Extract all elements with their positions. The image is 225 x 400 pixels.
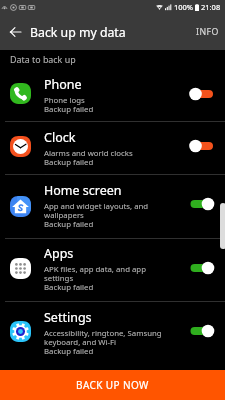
staticText: Back up my data: [30, 24, 126, 41]
staticText: Alarms and world clocks Backup failed: [44, 148, 133, 168]
staticText: Settings: [44, 309, 92, 326]
button[interactable]: Clock: [0, 122, 225, 174]
button[interactable]: Apps: [0, 239, 225, 301]
staticText: Accessibility, ringtone, Samsung keyboar…: [44, 328, 162, 357]
staticText: 21:08: [201, 2, 221, 12]
button[interactable]: Settings on: [186, 321, 218, 341]
staticText: App and widget layouts, and wallpapers B…: [44, 201, 149, 230]
staticText: APK files, app data, and app settings Ba…: [44, 264, 146, 293]
button[interactable]: Apps on: [186, 258, 218, 278]
staticText: Data to back up: [10, 53, 76, 65]
staticText: 100%: [174, 2, 194, 12]
button[interactable]: Settings: [0, 302, 225, 364]
staticText: Phone: [44, 76, 82, 93]
button[interactable]: Home screen on: [186, 194, 218, 214]
staticText: Home screen: [44, 182, 122, 199]
staticText: BACK UP NOW: [76, 378, 149, 392]
button[interactable]: Navigate up: [3, 20, 27, 44]
button[interactable]: Home screen: [0, 175, 225, 238]
staticText: INFO: [196, 26, 219, 38]
staticText: Phone logs Backup failed: [44, 95, 94, 115]
button[interactable]: INFO: [188, 19, 225, 45]
button[interactable]: Clock off: [186, 136, 218, 156]
button[interactable]: Phone: [0, 68, 225, 121]
button[interactable]: BACK UP NOW: [0, 370, 225, 400]
staticText: Clock: [44, 129, 76, 146]
button[interactable]: Phone off: [186, 84, 218, 104]
staticText: Apps: [44, 245, 74, 262]
